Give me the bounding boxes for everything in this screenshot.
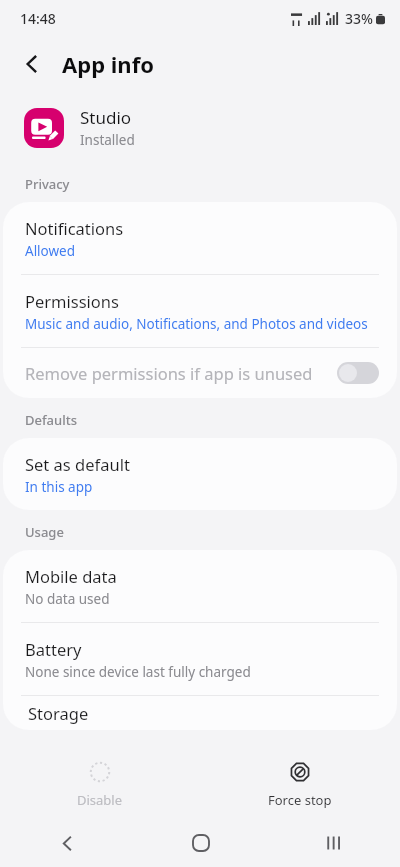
staticText: Usage [25,523,64,541]
staticText: Storage [28,702,89,724]
button[interactable]: Notifications [3,202,397,274]
staticText: Installed [80,131,135,149]
button[interactable]: Set as default [3,438,397,510]
button[interactable]: Home [134,819,267,867]
staticText: Remove permissions if app is unused [25,362,313,384]
staticText: No data used [25,590,110,608]
staticText: Permissions [25,290,119,312]
button[interactable]: Remove permissions if app is unused [3,348,397,398]
staticText: App info [62,49,154,79]
staticText: Force stop [268,791,332,809]
button[interactable]: Permissions [3,275,397,347]
staticText: Set as default [25,453,130,475]
staticText: Mobile data [25,565,117,587]
staticText: Privacy [25,175,70,193]
button[interactable]: Back [10,42,54,86]
button[interactable]: Battery [3,623,397,695]
staticText: Battery [25,638,82,660]
staticText: Notifications [25,217,124,239]
staticText: Allowed [25,242,76,260]
staticText: None since device last fully charged [25,663,251,681]
button[interactable]: Mobile data [3,550,397,622]
button[interactable]: Force stop [200,751,400,819]
button[interactable]: Back [0,819,134,867]
staticText: Music and audio, Notifications, and Phot… [25,315,368,333]
staticText: In this app [25,478,93,496]
staticText: Disable [77,791,123,809]
button[interactable]: Studio [0,92,400,159]
button[interactable]: Storage [3,696,397,730]
staticText: 33% [345,9,373,28]
button[interactable]: Disable [0,751,200,819]
staticText: Studio [80,106,132,129]
staticText: Defaults [25,411,78,429]
staticText: 14:48 [20,9,56,28]
button[interactable]: Recents [267,819,400,867]
